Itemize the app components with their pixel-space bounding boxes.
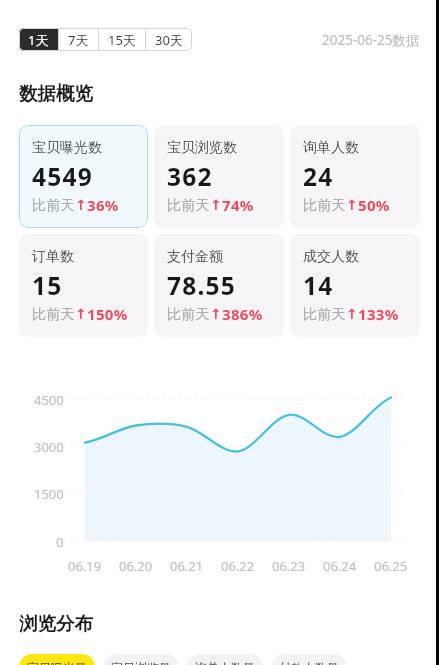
button[interactable]: 询单人数量 (187, 654, 263, 665)
staticText: 宝贝浏览量 (111, 660, 171, 665)
staticText: 36% (87, 195, 119, 215)
staticText: 数据概览 (19, 82, 93, 105)
staticText: 362 (167, 160, 213, 193)
staticText: 133% (358, 304, 399, 324)
staticText: ↑ (75, 306, 87, 322)
staticText: 比前天 (303, 196, 346, 214)
button[interactable]: 支付金额 (154, 234, 284, 337)
staticText: ↑ (210, 306, 222, 322)
staticText: 成交人数 (303, 248, 359, 266)
staticText: ↑ (346, 306, 358, 322)
staticText: 询单人数 (303, 139, 359, 157)
staticText: 宝贝曝光数 (32, 139, 102, 157)
staticText: 1500 (34, 485, 64, 503)
staticText: 宝贝浏览数 (167, 139, 237, 157)
staticText: 比前天 (32, 196, 75, 214)
staticText: 1天 (28, 31, 49, 49)
button[interactable]: 付款人数量 (271, 654, 347, 665)
staticText: 4549 (32, 160, 93, 193)
staticText: 7天 (68, 31, 89, 49)
staticText: 4500 (34, 391, 64, 409)
staticText: 浏览分布 (19, 612, 93, 635)
staticText: 14 (303, 269, 334, 302)
staticText: ↑ (210, 197, 222, 213)
staticText: 宝贝曝光量 (27, 660, 87, 665)
staticText: 0 (56, 533, 64, 551)
button[interactable]: 7天 (59, 28, 98, 51)
button[interactable]: 询单人数 (290, 125, 420, 228)
staticText: ↑ (346, 197, 358, 213)
staticText: 15天 (108, 31, 136, 49)
staticText: 3000 (34, 438, 64, 456)
staticText: 24 (303, 160, 334, 193)
staticText: 比前天 (32, 305, 75, 323)
staticText: 询单人数量 (195, 660, 255, 665)
button[interactable]: 15天 (99, 28, 145, 51)
button[interactable]: 1天 (19, 28, 58, 51)
staticText: 06.23 (272, 557, 306, 575)
staticText: 78.55 (167, 269, 236, 302)
staticText: 比前天 (167, 305, 210, 323)
button[interactable]: 30天 (146, 28, 192, 51)
button[interactable]: 宝贝浏览量 (103, 654, 179, 665)
staticText: 06.22 (221, 557, 255, 575)
staticText: 74% (222, 195, 254, 215)
staticText: 30天 (155, 31, 183, 49)
staticText: 150% (87, 304, 128, 324)
button[interactable]: 宝贝曝光量 (19, 654, 95, 665)
staticText: 支付金额 (167, 248, 223, 266)
button[interactable]: 宝贝浏览数 (154, 125, 284, 228)
staticText: 386% (222, 304, 263, 324)
staticText: 06.19 (68, 557, 102, 575)
staticText: 比前天 (167, 196, 210, 214)
staticText: 06.20 (119, 557, 153, 575)
button[interactable]: 宝贝曝光数 (19, 125, 148, 228)
button[interactable]: 成交人数 (290, 234, 420, 337)
staticText: 50% (358, 195, 390, 215)
staticText: 06.25 (374, 557, 408, 575)
staticText: 15 (32, 269, 63, 302)
staticText: 订单数 (32, 248, 74, 266)
staticText: 比前天 (303, 305, 346, 323)
button[interactable]: 订单数 (19, 234, 148, 337)
staticText: 2025-06-25数据 (322, 31, 420, 49)
staticText: 付款人数量 (279, 660, 339, 665)
staticText: ↑ (75, 197, 87, 213)
staticText: 06.24 (323, 557, 357, 575)
staticText: 06.21 (170, 557, 204, 575)
